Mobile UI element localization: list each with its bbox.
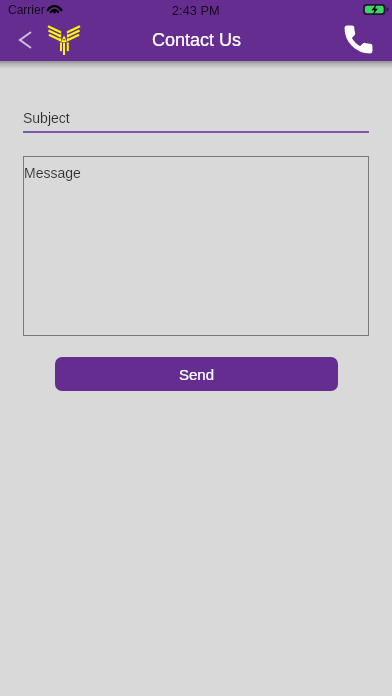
- button[interactable]: Back: [8, 23, 42, 57]
- button[interactable]: Call: [341, 22, 375, 56]
- button[interactable]: Send: [55, 357, 338, 391]
- staticText: 2:43 PM: [172, 3, 220, 17]
- staticText: Contact Us: [152, 30, 242, 50]
- staticText: Message: [24, 165, 81, 181]
- staticText: Subject: [23, 110, 70, 126]
- staticText: Carrier: [8, 3, 45, 16]
- staticText: Send: [179, 366, 215, 383]
